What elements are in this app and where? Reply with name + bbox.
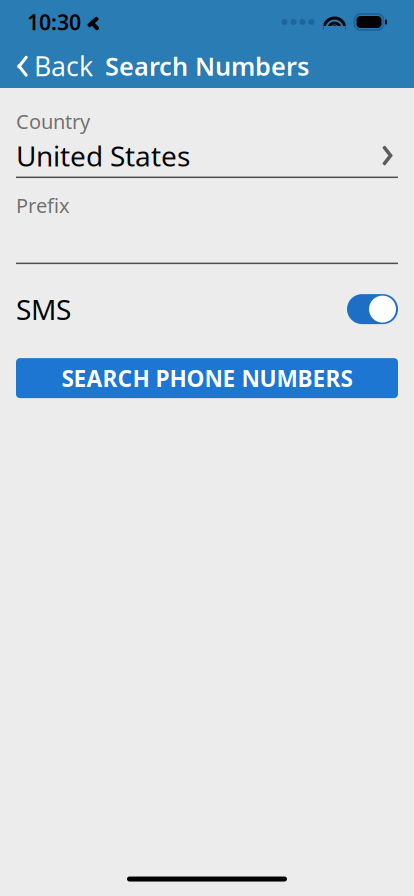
- staticText: Back: [34, 48, 93, 84]
- button[interactable]: SMS: [16, 278, 398, 340]
- button[interactable]: Back: [4, 44, 105, 88]
- button[interactable]: SEARCH PHONE NUMBERS: [16, 358, 398, 398]
- staticText: Search Numbers: [105, 49, 309, 83]
- staticText: United States: [16, 137, 190, 174]
- staticText: 10:30: [27, 8, 81, 36]
- button[interactable]: United States: [16, 135, 398, 177]
- staticText: SEARCH PHONE NUMBERS: [61, 363, 352, 393]
- staticText: SMS: [16, 290, 71, 328]
- staticText: Prefix: [16, 192, 70, 219]
- button[interactable]: [16, 219, 398, 263]
- staticText: Country: [16, 108, 90, 135]
